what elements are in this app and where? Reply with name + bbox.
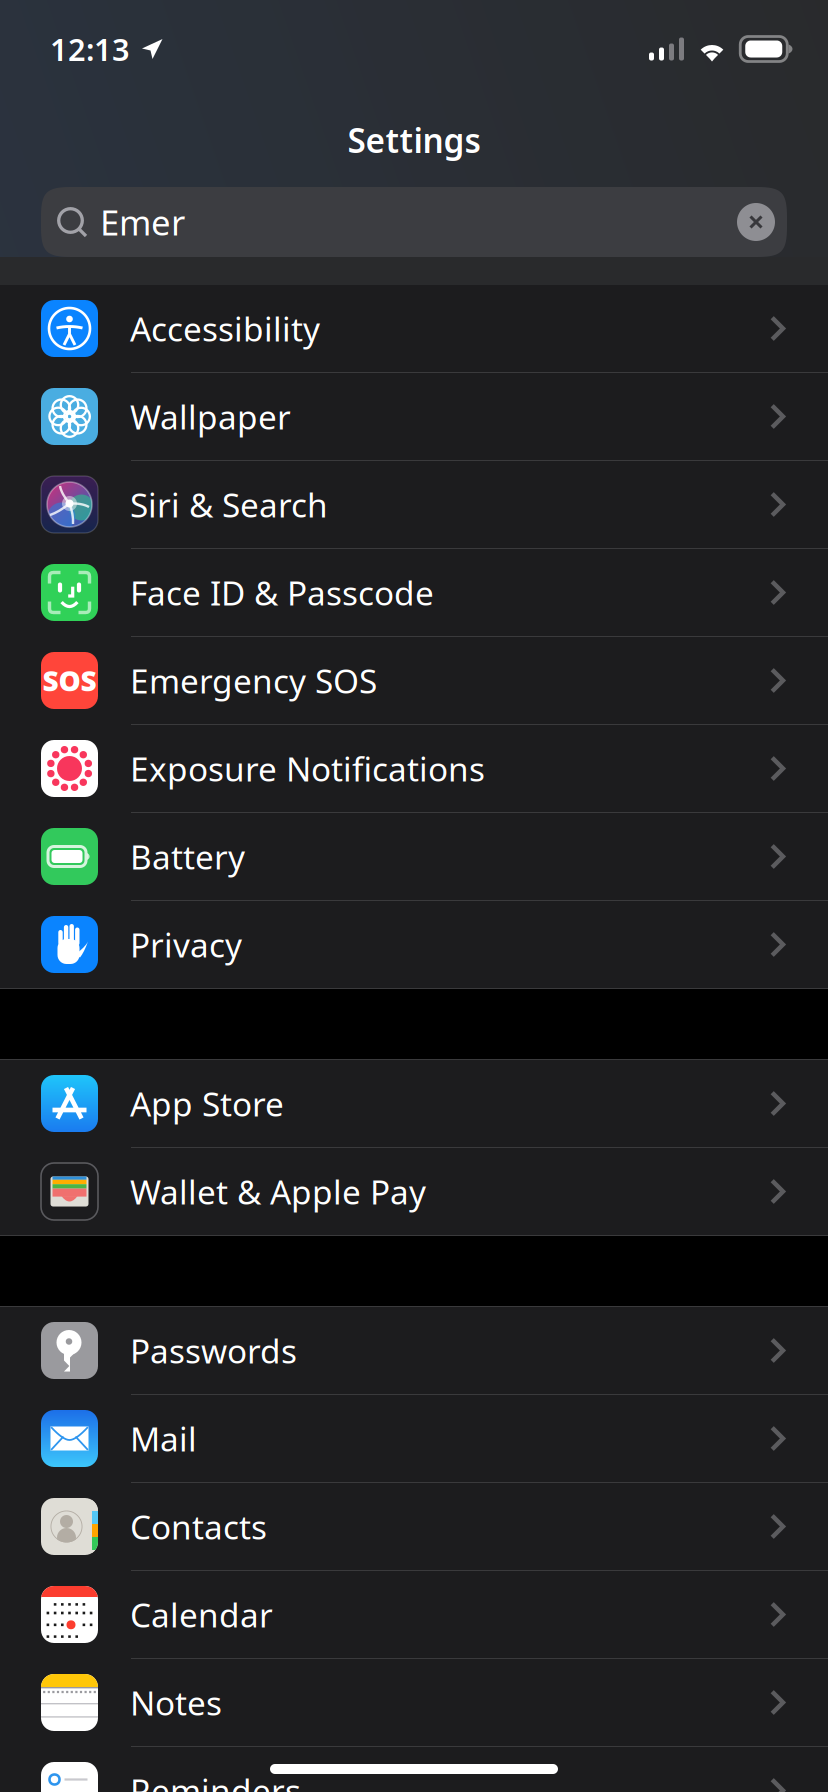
staticText: Emer — [100, 199, 185, 245]
button[interactable]: Privacy — [0, 901, 828, 989]
button[interactable]: Reminders — [0, 1747, 828, 1792]
button[interactable]: Accessibility — [0, 285, 828, 373]
button[interactable]: Siri & Search — [0, 461, 828, 549]
button[interactable]: SOS — [0, 637, 828, 725]
staticText: Emergency SOS — [130, 658, 377, 703]
staticText: Reminders — [130, 1768, 301, 1792]
button[interactable]: Exposure Notifications — [0, 725, 828, 813]
staticText: Wallpaper — [130, 394, 291, 439]
button[interactable]: Wallet & Apple Pay — [0, 1148, 828, 1236]
staticText: App Store — [130, 1081, 284, 1126]
staticText: Mail — [130, 1416, 197, 1461]
button[interactable]: Emer — [41, 187, 787, 257]
button[interactable]: Notes — [0, 1659, 828, 1747]
button[interactable]: Battery — [0, 813, 828, 901]
staticText: Notes — [130, 1680, 222, 1725]
staticText: Privacy — [130, 922, 242, 967]
button[interactable]: Contacts — [0, 1483, 828, 1571]
staticText: Calendar — [130, 1592, 273, 1637]
button[interactable]: Calendar — [0, 1571, 828, 1659]
button[interactable]: App Store — [0, 1060, 828, 1148]
staticText: SOS — [42, 662, 96, 699]
staticText: Siri & Search — [130, 482, 328, 527]
button[interactable]: Wallpaper — [0, 373, 828, 461]
button[interactable]: Mail — [0, 1395, 828, 1483]
button[interactable]: Passwords — [0, 1307, 828, 1395]
staticText: Settings — [347, 118, 480, 162]
staticText: Face ID & Passcode — [130, 570, 434, 615]
button[interactable]: Face ID & Passcode — [0, 549, 828, 637]
staticText: Contacts — [130, 1504, 267, 1549]
staticText: Exposure Notifications — [130, 746, 485, 791]
staticText: Wallet & Apple Pay — [130, 1169, 426, 1214]
staticText: 12:13 — [50, 29, 130, 69]
staticText: Passwords — [130, 1328, 297, 1373]
staticText: Accessibility — [130, 306, 320, 351]
staticText: Battery — [130, 834, 245, 879]
